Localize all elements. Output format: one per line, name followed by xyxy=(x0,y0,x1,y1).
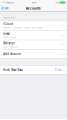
staticText: LTE xyxy=(10,1,13,4)
button[interactable]: Add Account xyxy=(0,50,67,58)
staticText: Push xyxy=(55,68,62,72)
button[interactable]: Gmail xyxy=(0,31,67,40)
button[interactable]: Exchange xyxy=(0,40,67,49)
staticText: AT&T xyxy=(6,1,10,4)
staticText: Contacts, Calendars, Safari and 6 more xyxy=(3,26,42,29)
staticText: Gmail xyxy=(3,32,10,35)
staticText: ACCOUNTS xyxy=(3,16,14,19)
staticText: ••••• xyxy=(1,1,6,4)
staticText: Accounts xyxy=(26,6,41,10)
staticText: iCloud xyxy=(3,22,13,26)
button[interactable]: Fetch New Data xyxy=(0,66,67,74)
button[interactable]: Mail xyxy=(0,5,10,12)
staticText: Mail xyxy=(4,7,9,10)
staticText: Exchange xyxy=(3,41,15,45)
staticText: 100% xyxy=(55,1,59,4)
staticText: Add Account xyxy=(3,52,21,56)
button[interactable]: iCloud xyxy=(0,21,67,30)
staticText: Fetch New Data xyxy=(3,68,22,72)
staticText: Mail, Notes xyxy=(3,36,16,39)
staticText: 9:41 xyxy=(32,1,36,4)
staticText: Mail, Contacts xyxy=(3,45,18,48)
